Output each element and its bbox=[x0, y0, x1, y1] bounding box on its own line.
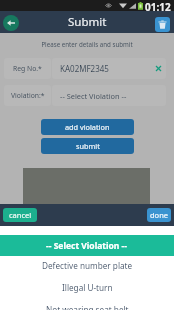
button[interactable]: cancel bbox=[3, 208, 37, 222]
staticText: submit bbox=[76, 141, 100, 151]
staticText: Violation:* bbox=[11, 91, 45, 100]
button[interactable]: KA02MF2345 bbox=[52, 58, 166, 79]
button[interactable]: Delete bbox=[155, 17, 170, 32]
button[interactable]: -- Select Violation -- bbox=[52, 85, 166, 106]
staticText: cancel bbox=[9, 210, 32, 220]
staticText: Submit bbox=[68, 14, 107, 30]
staticText: 01:12 bbox=[145, 0, 171, 11]
button[interactable]: Illegal U-turn bbox=[0, 276, 174, 298]
staticText: Illegal U-turn bbox=[62, 282, 113, 293]
staticText: Reg No.* bbox=[13, 64, 42, 73]
staticText: Not wearing seat belt bbox=[46, 304, 129, 310]
button[interactable]: Defective number plate bbox=[0, 254, 174, 276]
button[interactable]: submit bbox=[41, 138, 134, 154]
staticText: Defective number plate bbox=[42, 260, 133, 271]
staticText: add violation bbox=[65, 122, 110, 132]
button[interactable]: done bbox=[147, 208, 171, 222]
staticText: -- Select Violation -- bbox=[46, 240, 128, 252]
staticText: done bbox=[150, 210, 169, 220]
staticText: KA02MF2345 bbox=[60, 63, 109, 74]
staticText: Please enter details and submit bbox=[0, 40, 174, 48]
button[interactable]: add violation bbox=[41, 119, 134, 135]
button[interactable]: Not wearing seat belt bbox=[0, 298, 174, 310]
button[interactable]: Back bbox=[3, 15, 19, 31]
staticText: -- Select Violation -- bbox=[60, 91, 127, 101]
